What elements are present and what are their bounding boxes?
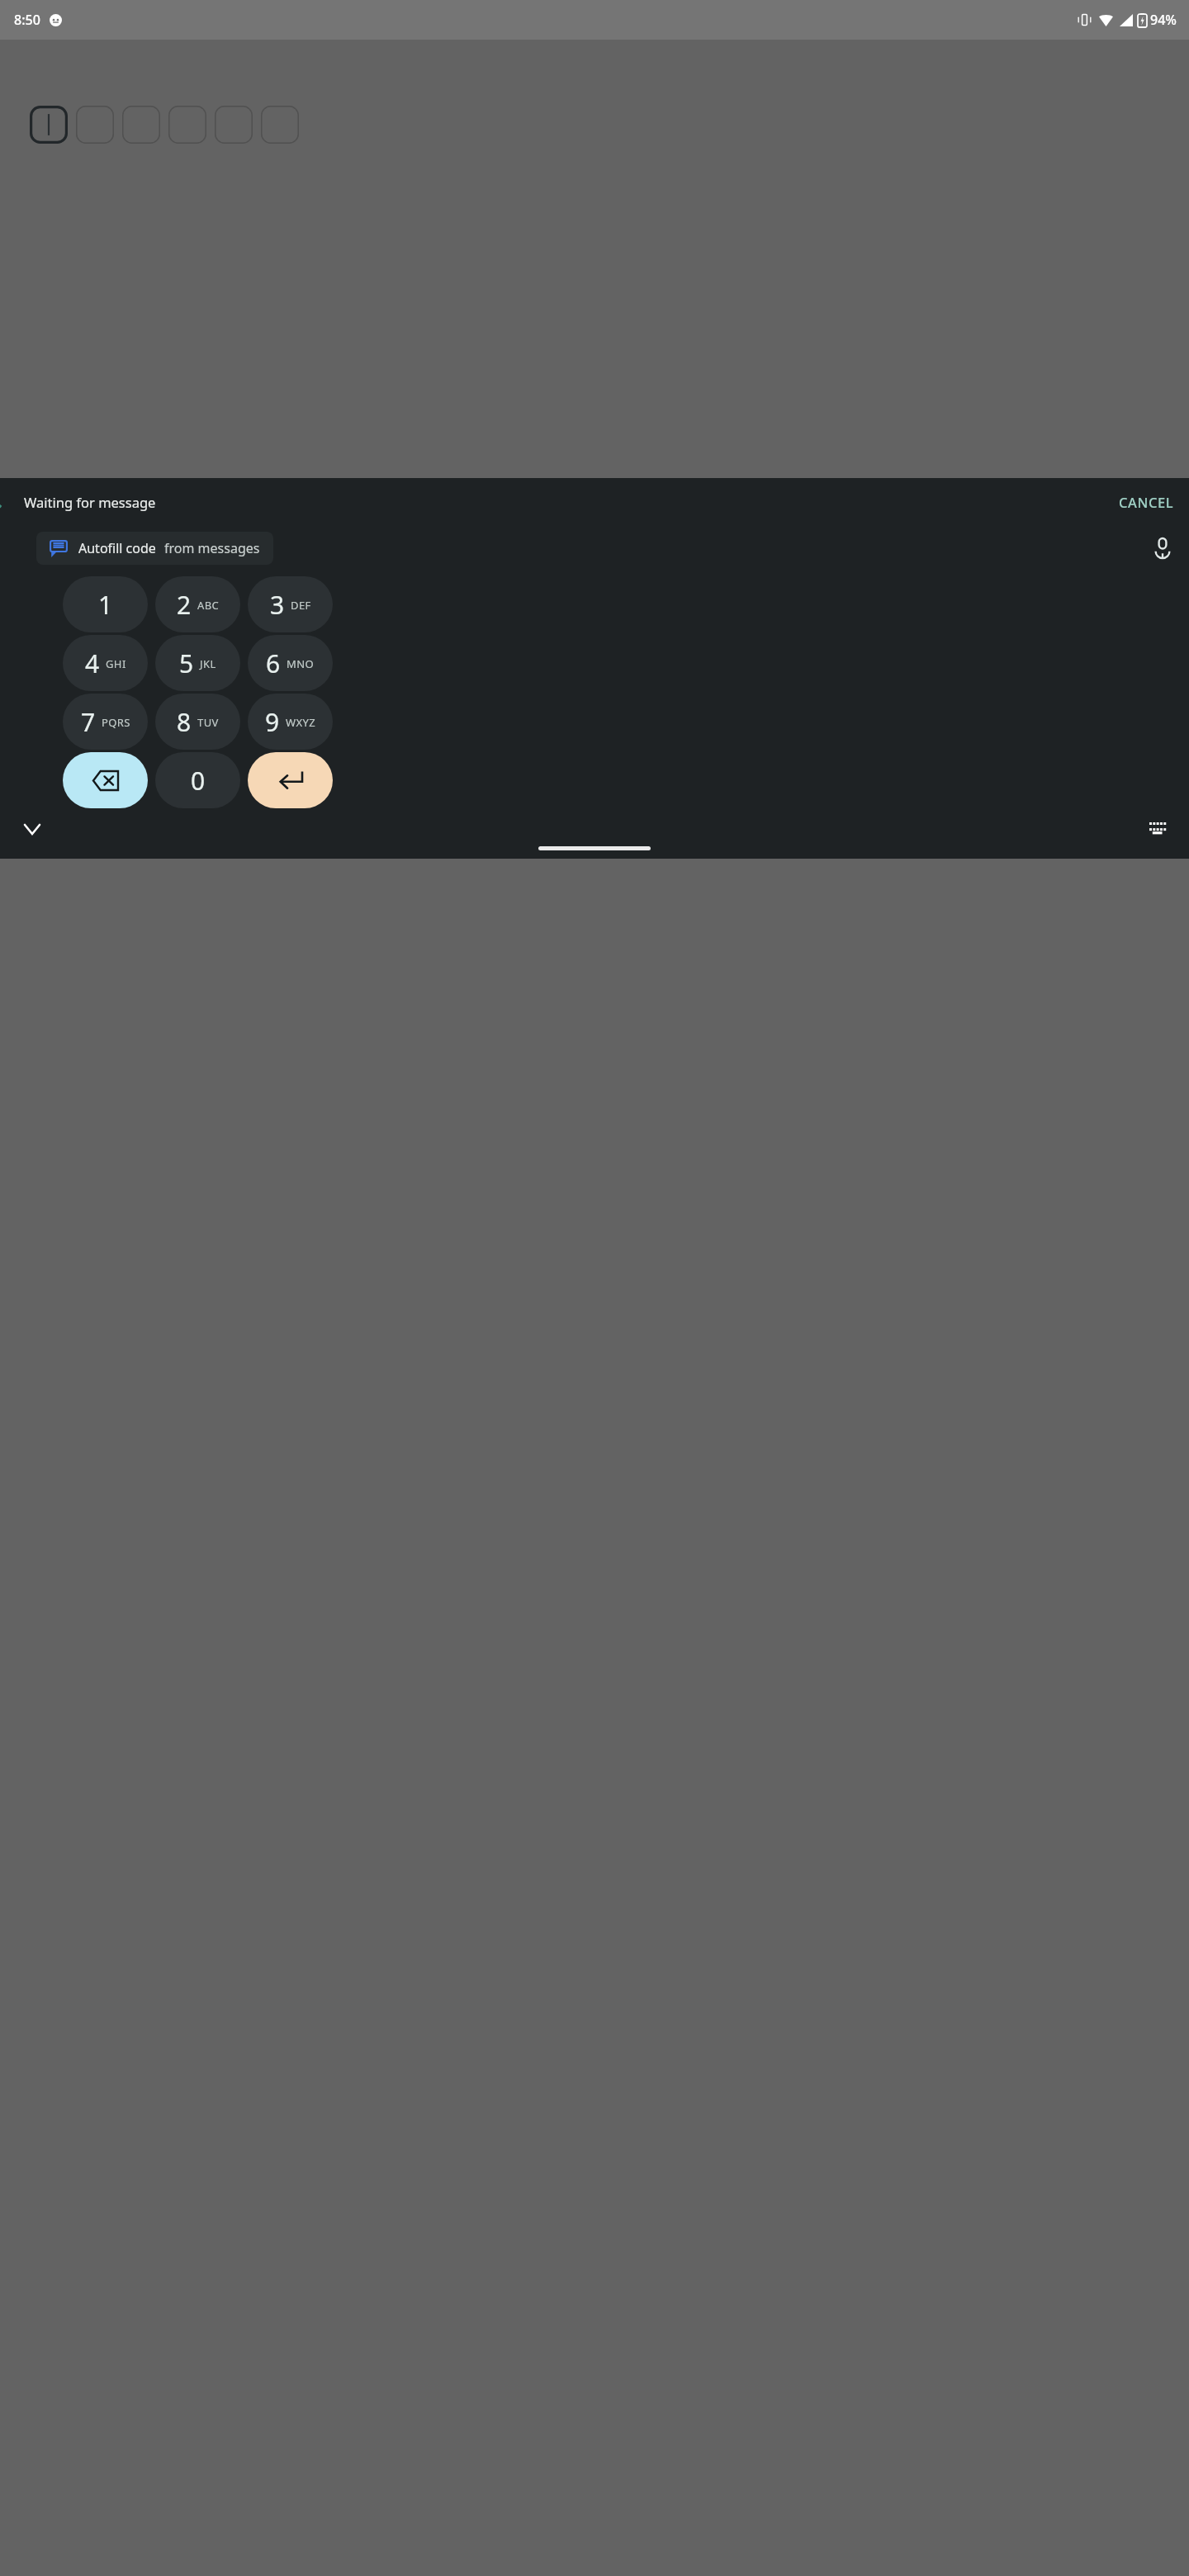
staticText: 6 [266,646,281,680]
button[interactable]: Voice input [1147,530,1178,566]
button[interactable]: 0 [155,752,240,808]
staticText: 0 [191,764,206,798]
button[interactable]: Code digit 2 [76,106,114,144]
staticText: CANCEL [1119,493,1174,511]
staticText: 8:50 [14,11,40,29]
button[interactable]: 3 [248,576,333,632]
staticText: 94% [1150,11,1177,29]
button[interactable]: 9 [248,694,333,750]
staticText: from messages [164,539,260,557]
staticText: 1 [98,588,113,622]
button[interactable]: Enter [248,752,333,808]
staticText: JKL [200,656,216,671]
staticText: GHI [106,656,126,671]
button[interactable]: 2 [155,576,240,632]
staticText: 2 [177,588,192,622]
button[interactable]: Code digit 1 [30,106,68,144]
button[interactable]: Hide keyboard [15,815,50,844]
staticText: ABC [197,598,220,613]
button[interactable]: Code digit 6 [261,106,299,144]
staticText: TUV [197,715,219,730]
staticText: WXYZ [286,715,316,730]
staticText: Waiting for message [24,493,156,511]
button[interactable]: Backspace [63,752,148,808]
staticText: 5 [179,646,194,680]
button[interactable]: 7 [63,694,148,750]
staticText: Autofill code [78,539,156,557]
staticText: MNO [287,656,315,671]
button[interactable]: 1 [63,576,148,632]
button[interactable]: 8 [155,694,240,750]
button[interactable]: Code digit 3 [122,106,160,144]
button[interactable]: Switch keyboard [1141,814,1175,844]
button[interactable]: 6 [248,635,333,691]
button[interactable]: Code digit 5 [215,106,253,144]
staticText: 7 [81,705,96,739]
staticText: 8 [177,705,192,739]
staticText: PQRS [102,715,130,730]
staticText: 4 [85,646,100,680]
button[interactable]: Code digit 4 [168,106,206,144]
staticText: 3 [270,588,285,622]
button[interactable]: CANCEL [1104,485,1189,519]
button[interactable]: 5 [155,635,240,691]
button[interactable]: Autofill code [36,532,273,565]
staticText: 9 [265,705,280,739]
staticText: DEF [291,598,311,613]
button[interactable]: 4 [63,635,148,691]
